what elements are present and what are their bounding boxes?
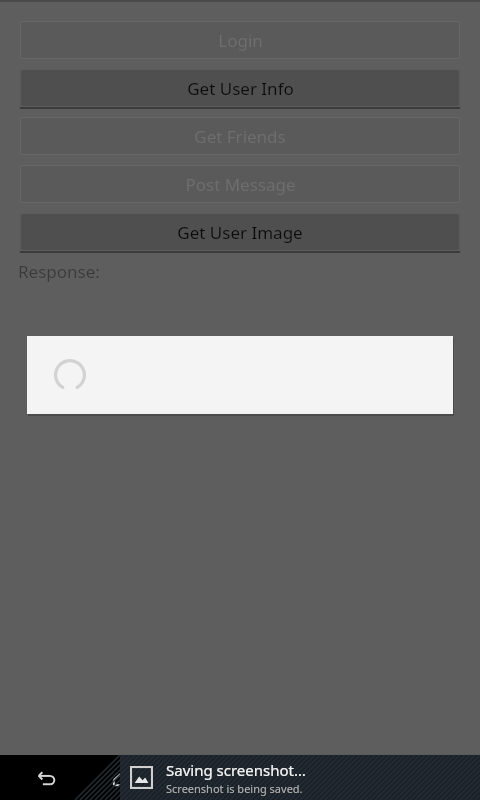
button[interactable]: Home: [84, 755, 160, 800]
staticText: Response:: [18, 260, 100, 283]
button[interactable]: Get Friends: [20, 117, 460, 157]
button[interactable]: Login: [20, 21, 460, 61]
button[interactable]: Saving screenshot…: [120, 755, 480, 800]
staticText: Saving screenshot…: [166, 760, 306, 780]
staticText: Login: [218, 29, 263, 52]
button[interactable]: Back: [8, 755, 84, 800]
staticText: Get User Info: [187, 77, 294, 100]
button[interactable]: Get User Info: [20, 69, 460, 109]
button[interactable]: Post Message: [20, 165, 460, 205]
staticText: Post Message: [185, 173, 296, 196]
staticText: Screenshot is being saved.: [166, 781, 303, 796]
staticText: Get Friends: [194, 125, 286, 148]
staticText: Get User Image: [177, 221, 303, 244]
button[interactable]: Get User Image: [20, 213, 460, 253]
